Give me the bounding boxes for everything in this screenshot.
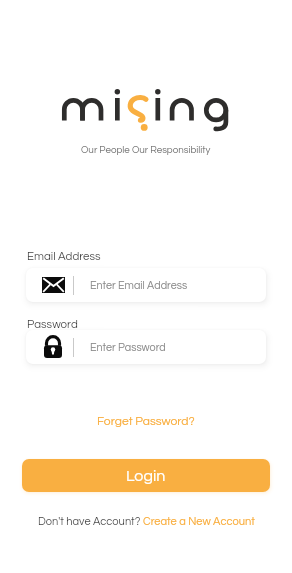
button[interactable]: Create a New Account xyxy=(143,516,255,527)
staticText: Email Address xyxy=(27,251,101,263)
staticText: Create a New Account xyxy=(143,516,255,527)
staticText: Our People Our Responsibility xyxy=(81,145,211,155)
staticText: Forget Password? xyxy=(97,415,195,427)
staticText: Don't have Account? xyxy=(38,516,143,527)
staticText: Enter Password xyxy=(90,342,166,353)
button[interactable]: Email xyxy=(26,268,266,302)
other: Email xyxy=(42,277,65,293)
button[interactable]: Password xyxy=(26,330,266,364)
button[interactable]: Login xyxy=(22,459,270,492)
staticText: Login xyxy=(126,468,166,484)
staticText: Enter Email Address xyxy=(90,280,188,291)
button[interactable]: Forget Password? xyxy=(91,412,201,430)
other: Password xyxy=(44,337,62,358)
staticText: Password xyxy=(27,319,78,331)
